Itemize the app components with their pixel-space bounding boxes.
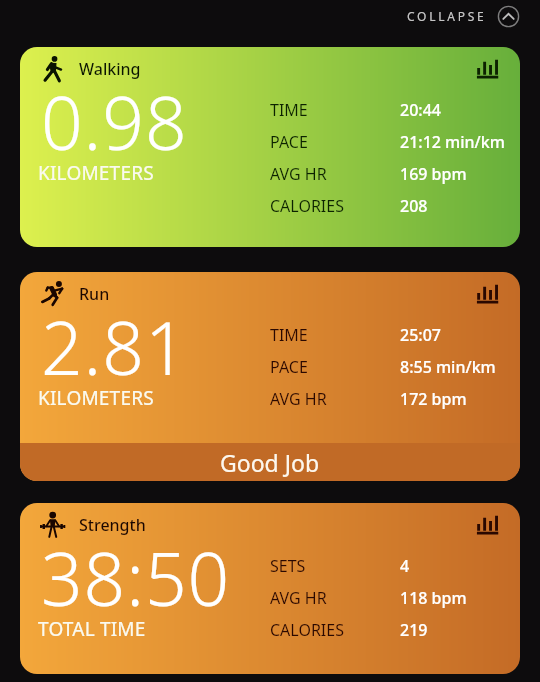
staticText: AVG HR	[270, 587, 327, 609]
staticText: 38:50	[41, 528, 231, 627]
button[interactable]: Good Job	[20, 443, 520, 481]
button[interactable]: View statistics	[472, 509, 502, 539]
staticText: COLLAPSE	[407, 8, 487, 24]
staticText: 219	[400, 619, 428, 641]
staticText: 8:55 min/km	[400, 356, 496, 378]
staticText: 2.81	[41, 297, 188, 396]
staticText: CALORIES	[270, 619, 344, 641]
staticText: 21:12 min/km	[400, 131, 505, 153]
staticText: PACE	[270, 356, 308, 378]
staticText: 4	[400, 555, 410, 577]
button[interactable]: View statistics	[472, 278, 502, 308]
staticText: TIME	[270, 99, 308, 121]
staticText: 169 bpm	[400, 163, 467, 185]
staticText: TIME	[270, 324, 308, 346]
button[interactable]: Walking	[20, 47, 520, 247]
staticText: Strength	[79, 514, 146, 536]
button[interactable]: COLLAPSE	[397, 2, 540, 32]
other: Collapse	[498, 6, 520, 28]
staticText: Good Job	[220, 447, 320, 478]
staticText: Run	[79, 283, 110, 305]
staticText: 172 bpm	[400, 388, 467, 410]
staticText: KILOMETERS	[38, 160, 154, 186]
staticText: KILOMETERS	[38, 385, 154, 411]
staticText: 0.98	[41, 72, 188, 171]
staticText: SETS	[270, 555, 306, 577]
staticText: AVG HR	[270, 163, 327, 185]
staticText: Walking	[79, 58, 141, 80]
staticText: TOTAL TIME	[38, 616, 146, 642]
staticText: CALORIES	[270, 195, 344, 217]
staticText: 25:07	[400, 324, 441, 346]
button[interactable]: Strength	[20, 503, 520, 674]
staticText: 208	[400, 195, 428, 217]
button[interactable]: Run	[20, 272, 520, 481]
button[interactable]: View statistics	[472, 53, 502, 83]
staticText: AVG HR	[270, 388, 327, 410]
staticText: 20:44	[400, 99, 441, 121]
staticText: PACE	[270, 131, 308, 153]
staticText: 118 bpm	[400, 587, 467, 609]
